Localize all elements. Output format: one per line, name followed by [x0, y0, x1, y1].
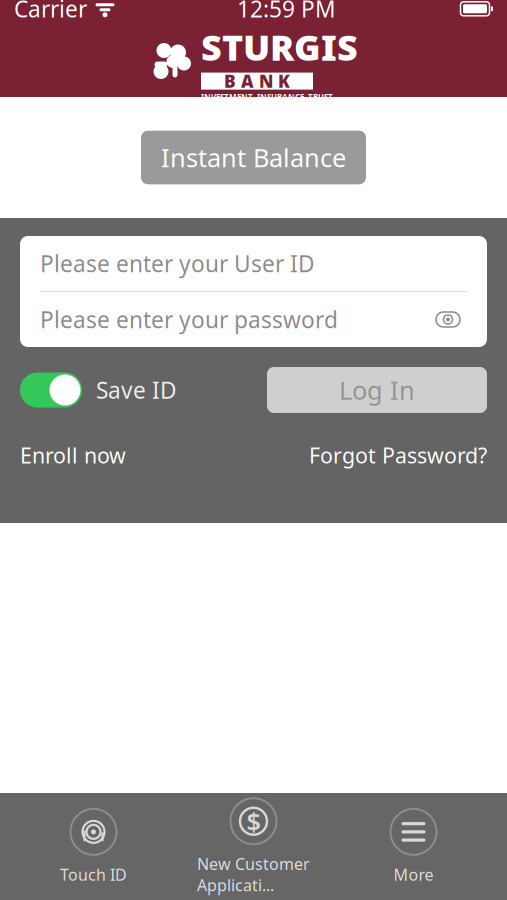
button[interactable]: Log In	[267, 367, 487, 413]
staticText: More	[393, 864, 433, 885]
button[interactable]: Touch ID	[13, 802, 173, 891]
staticText: INVESTMENT INSURANCE TRUST	[201, 92, 333, 102]
staticText: Enroll now	[20, 441, 126, 469]
staticText: 12:59 PM	[237, 0, 336, 24]
staticText: Forgot Password?	[309, 441, 487, 469]
staticText: Log In	[339, 373, 415, 407]
staticText: New Customer Applicati...	[197, 853, 310, 896]
staticText: B A N K	[224, 70, 290, 93]
button[interactable]: Save ID	[20, 372, 177, 407]
staticText: Save ID	[96, 375, 177, 405]
staticText: Carrier	[14, 0, 87, 24]
staticText: Please enter your password	[40, 304, 338, 334]
staticText: $	[246, 804, 260, 838]
staticText: STURGIS	[201, 23, 358, 71]
button[interactable]: Enroll now	[20, 435, 126, 475]
button[interactable]: New Customer Application	[173, 791, 333, 900]
staticText: Instant Balance	[161, 141, 346, 174]
button[interactable]: Show password	[429, 304, 467, 334]
button[interactable]: Forgot Password?	[309, 435, 487, 475]
staticText: Touch ID	[60, 864, 127, 885]
button[interactable]: More	[333, 802, 493, 891]
button[interactable]: Instant Balance	[141, 131, 366, 184]
staticText: Please enter your User ID	[40, 248, 315, 278]
